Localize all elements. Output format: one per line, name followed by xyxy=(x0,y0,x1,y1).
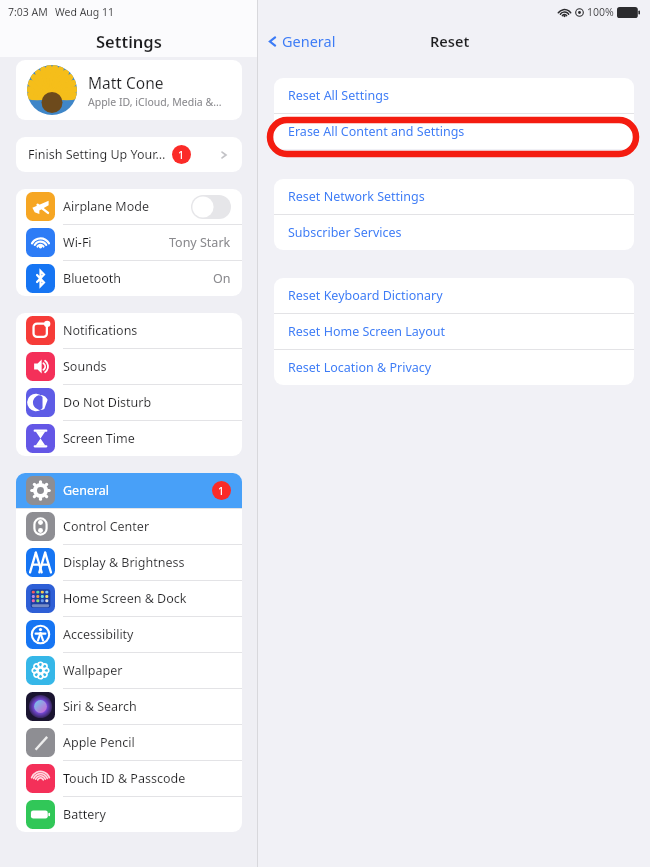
button[interactable]: Sounds xyxy=(16,349,242,384)
staticText: Airplane Mode xyxy=(63,198,149,215)
staticText: Reset Home Screen Layout xyxy=(288,323,446,340)
staticText: Bluetooth xyxy=(63,270,122,287)
staticText: Subscriber Services xyxy=(288,224,402,241)
button[interactable]: Finish Setting Up Your… xyxy=(16,137,242,172)
button[interactable]: Control Center xyxy=(16,509,242,544)
staticText: Battery xyxy=(63,806,106,823)
staticText: Tony Stark xyxy=(169,234,231,251)
staticText: Control Center xyxy=(63,518,150,535)
staticText: 7:03 AM xyxy=(8,5,48,19)
staticText: 1 xyxy=(178,147,185,162)
staticText: General xyxy=(63,482,110,499)
staticText: Wed Aug 11 xyxy=(55,5,115,19)
staticText: Accessibility xyxy=(63,626,134,643)
button[interactable]: Reset Keyboard Dictionary xyxy=(274,278,634,313)
button[interactable]: Subscriber Services xyxy=(274,215,634,250)
staticText: Reset Keyboard Dictionary xyxy=(288,287,443,304)
button[interactable]: Reset Location & Privacy xyxy=(274,350,634,385)
staticText: Matt Cone xyxy=(88,72,164,93)
button[interactable]: Screen Time xyxy=(16,421,242,456)
button[interactable]: Display & Brightness xyxy=(16,545,242,580)
button[interactable]: Touch ID & Passcode xyxy=(16,761,242,796)
button[interactable]: Do Not Disturb xyxy=(16,385,242,420)
staticText: On xyxy=(213,270,231,287)
staticText: Apple Pencil xyxy=(63,734,135,751)
button[interactable]: Wallpaper xyxy=(16,653,242,688)
staticText: Do Not Disturb xyxy=(63,394,152,411)
button[interactable]: Reset Network Settings xyxy=(274,179,634,214)
button[interactable]: Wi-Fi xyxy=(16,225,242,260)
staticText: Reset xyxy=(430,31,470,51)
staticText: Erase All Content and Settings xyxy=(288,123,465,140)
staticText: Display & Brightness xyxy=(63,554,185,571)
staticText: Settings xyxy=(96,30,162,52)
button[interactable]: Battery xyxy=(16,797,242,832)
button[interactable]: Reset Home Screen Layout xyxy=(274,314,634,349)
button[interactable]: Siri & Search xyxy=(16,689,242,724)
other: Battery full xyxy=(617,7,640,18)
staticText: Notifications xyxy=(63,322,138,339)
other: Wi-Fi xyxy=(558,7,571,18)
staticText: Apple ID, iCloud, Media &… xyxy=(88,95,222,109)
button[interactable]: Bluetooth xyxy=(16,261,242,296)
button[interactable]: Notifications xyxy=(16,313,242,348)
staticText: Reset All Settings xyxy=(288,87,389,104)
staticText: Home Screen & Dock xyxy=(63,590,187,607)
staticText: Touch ID & Passcode xyxy=(63,770,186,787)
staticText: 1 xyxy=(218,483,225,498)
button[interactable]: Reset All Settings xyxy=(274,78,634,113)
staticText: Reset Location & Privacy xyxy=(288,359,432,376)
staticText: Wallpaper xyxy=(63,662,123,679)
button[interactable]: General xyxy=(258,27,344,55)
staticText: Siri & Search xyxy=(63,698,137,715)
button[interactable]: Erase All Content and Settings xyxy=(274,114,634,149)
staticText: Screen Time xyxy=(63,430,135,447)
staticText: General xyxy=(282,31,336,51)
staticText: Reset Network Settings xyxy=(288,188,425,205)
button[interactable]: Airplane Mode xyxy=(16,189,242,224)
button[interactable]: Home Screen & Dock xyxy=(16,581,242,616)
button[interactable]: Apple Pencil xyxy=(16,725,242,760)
staticText: Sounds xyxy=(63,358,107,375)
button[interactable]: Accessibility xyxy=(16,617,242,652)
button[interactable]: General xyxy=(16,473,242,508)
staticText: Wi-Fi xyxy=(63,234,92,251)
button[interactable]: Matt Cone xyxy=(16,60,242,120)
staticText: 100% xyxy=(587,5,614,19)
staticText: Finish Setting Up Your… xyxy=(28,146,166,163)
